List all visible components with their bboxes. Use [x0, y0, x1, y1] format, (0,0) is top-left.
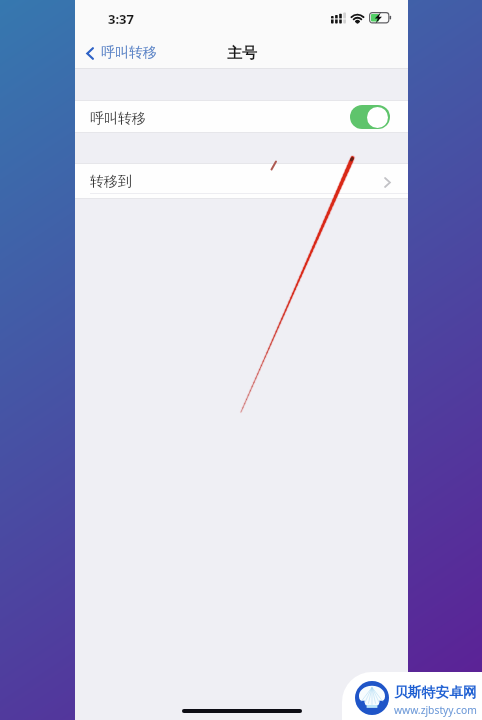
button[interactable]: 转移到: [75, 163, 408, 199]
button[interactable]: 呼叫转移: [82, 39, 163, 67]
staticText: 呼叫转移: [90, 110, 146, 128]
staticText: 贝斯特安卓网: [394, 684, 477, 701]
staticText: 3:37: [108, 10, 134, 28]
button[interactable]: Call forwarding toggle, on: [350, 105, 390, 129]
button[interactable]: 呼叫转移: [75, 100, 408, 133]
other: zjbstyy.com watermark: [342, 672, 482, 720]
staticText: 转移到: [90, 173, 132, 191]
staticText: www.zjbstyy.com: [394, 703, 477, 717]
staticText: 呼叫转移: [101, 44, 157, 62]
staticText: 主号: [227, 44, 257, 63]
